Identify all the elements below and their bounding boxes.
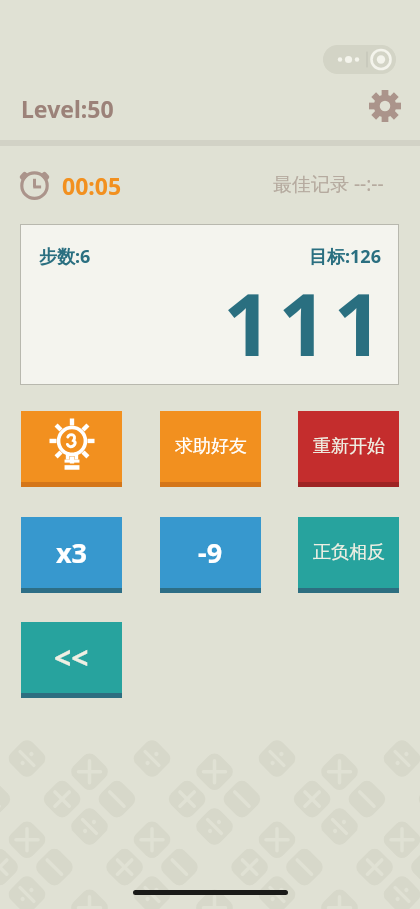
button[interactable]: Settings <box>367 88 403 124</box>
staticText: 求助好友 <box>175 435 247 458</box>
staticText: 重新开始 <box>313 435 385 458</box>
staticText: 最佳记录 --:-- <box>273 171 384 197</box>
staticText: 111 <box>223 264 389 381</box>
staticText: x3 <box>56 534 88 571</box>
button[interactable]: Hint 3 left <box>21 411 122 487</box>
button[interactable]: 重新开始 <box>298 411 399 487</box>
button[interactable]: x3 <box>21 517 122 593</box>
staticText: 00:05 <box>62 170 122 201</box>
staticText: -9 <box>198 534 223 571</box>
button[interactable]: -9 <box>160 517 261 593</box>
staticText: 步数:6 <box>39 244 91 269</box>
staticText: 目标:126 <box>309 244 381 269</box>
staticText: 正负相反 <box>313 541 385 564</box>
button[interactable]: 求助好友 <box>160 411 261 487</box>
staticText: Level:50 <box>21 93 114 124</box>
staticText: << <box>54 637 89 678</box>
button[interactable]: Undo <box>21 622 122 698</box>
button[interactable]: 正负相反 <box>298 517 399 593</box>
